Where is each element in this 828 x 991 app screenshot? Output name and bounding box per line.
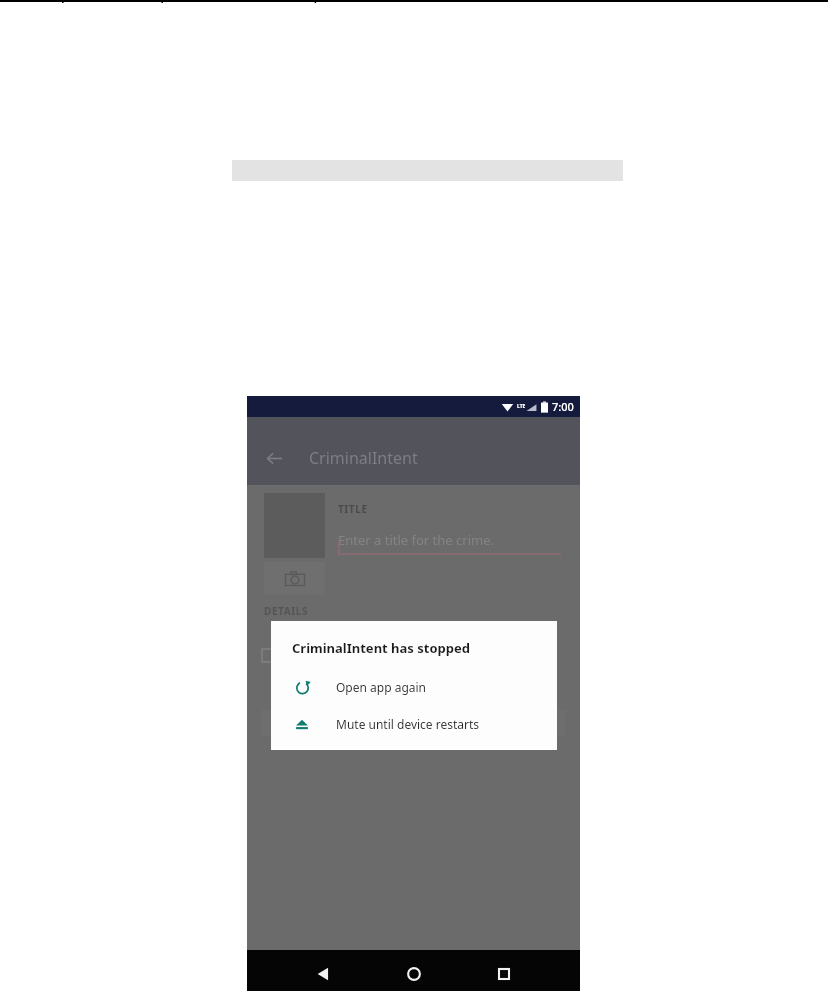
button[interactable]: Take photo bbox=[264, 562, 325, 595]
button[interactable]: Recent apps bbox=[489, 959, 519, 989]
button[interactable]: Enter a title for the crime. bbox=[338, 531, 561, 549]
button[interactable] bbox=[261, 648, 580, 663]
staticText: Open app again bbox=[336, 679, 427, 695]
staticText: CriminalIntent bbox=[309, 447, 418, 469]
button[interactable]: Back bbox=[308, 959, 338, 989]
button[interactable]: Open app again bbox=[292, 677, 543, 697]
button[interactable]: SEND CRIME REPORT bbox=[261, 710, 566, 736]
button[interactable]: Navigate up bbox=[261, 445, 287, 471]
staticText: SEND CRIME REPORT bbox=[356, 716, 471, 730]
staticText: DETAILS bbox=[264, 604, 309, 618]
staticText: LTE bbox=[517, 403, 526, 410]
button[interactable]: Home bbox=[399, 959, 429, 989]
staticText: Enter a title for the crime. bbox=[338, 531, 494, 549]
staticText: Mute until device restarts bbox=[336, 716, 480, 732]
staticText: CriminalIntent has stopped bbox=[292, 639, 470, 657]
button[interactable]: Mute until device restarts bbox=[292, 714, 543, 734]
staticText: TITLE bbox=[338, 502, 368, 516]
staticText: 7:00 bbox=[552, 399, 574, 414]
